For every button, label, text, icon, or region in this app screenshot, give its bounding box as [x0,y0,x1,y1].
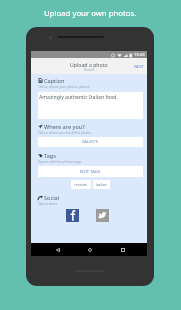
staticText: Upload your own photos. [44,8,137,19]
staticText: Tap to share [38,201,58,206]
staticText: Upload a photo [70,61,108,68]
staticText: Where are you? [44,123,85,131]
button[interactable]: Recent apps [117,243,128,256]
button[interactable]: Share on Twitter [96,209,109,222]
staticText: EDIT TAGS [80,169,101,175]
button[interactable]: Back [52,243,63,256]
staticText: Caption [44,77,65,85]
staticText: Social [44,194,60,202]
button[interactable]: crostini [71,180,91,189]
button[interactable]: Share on Facebook [66,209,79,222]
staticText: Tell us about your photo...please [38,84,90,89]
staticText: Amazingly authentic Italian food. [39,94,118,101]
button[interactable]: italian [93,180,110,189]
staticText: Tags [44,152,56,160]
staticText: Tell us where you took this photo [38,130,91,135]
staticText: SALVO'S [82,139,99,145]
staticText: crostini [74,182,88,187]
staticText: italian [96,182,107,187]
staticText: Details [84,68,95,72]
button[interactable]: NEXT [131,60,147,73]
staticText: NEXT [134,64,144,69]
button[interactable]: EDIT TAGS [38,166,143,177]
button[interactable]: Home [84,243,95,256]
button[interactable]: SALVO'S [38,137,143,147]
button[interactable]: Amazingly authentic Italian food. [38,92,143,119]
staticText: Tap to edit this photos tags [38,159,82,164]
staticText: 15:33 [134,52,145,58]
